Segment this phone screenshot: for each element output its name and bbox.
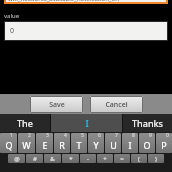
- staticText: +: [103, 155, 107, 163]
- staticText: =: [120, 155, 124, 163]
- staticText: I: [85, 117, 89, 129]
- staticText: U: [110, 139, 117, 151]
- button[interactable]: 8: [122, 133, 138, 153]
- staticText: ): [155, 155, 157, 163]
- button[interactable]: 3: [36, 133, 53, 153]
- staticText: value: [4, 12, 20, 20]
- button[interactable]: &: [44, 154, 61, 163]
- staticText: O: [143, 139, 151, 151]
- button[interactable]: *: [62, 154, 79, 163]
- staticText: &: [50, 155, 55, 163]
- staticText: *: [69, 155, 73, 163]
- button[interactable]: ): [148, 154, 164, 163]
- staticText: (: [138, 155, 140, 163]
- staticText: 8: [132, 133, 135, 139]
- staticText: 7: [115, 133, 118, 139]
- button[interactable]: 2: [18, 133, 35, 153]
- staticText: I: [128, 139, 132, 151]
- staticText: Y: [93, 139, 99, 151]
- button[interactable]: 1: [0, 133, 17, 153]
- staticText: Save: [49, 100, 65, 110]
- staticText: E: [42, 139, 48, 151]
- staticText: 0: [166, 133, 169, 139]
- staticText: #: [33, 155, 37, 163]
- button[interactable]: Save: [30, 96, 83, 113]
- button[interactable]: 6: [88, 133, 104, 153]
- staticText: 0: [10, 26, 15, 36]
- button[interactable]: 0: [4, 21, 168, 41]
- staticText: P: [161, 139, 167, 151]
- button[interactable]: (: [131, 154, 147, 163]
- staticText: 5: [81, 133, 84, 139]
- button[interactable]: The: [0, 114, 50, 132]
- button[interactable]: =: [114, 154, 130, 163]
- staticText: T: [76, 139, 82, 151]
- staticText: 9: [149, 133, 152, 139]
- button[interactable]: I: [51, 114, 122, 132]
- button[interactable]: -: [80, 154, 96, 163]
- staticText: 6: [98, 133, 101, 139]
- button[interactable]: 0: [156, 133, 172, 153]
- button[interactable]: 9: [139, 133, 155, 153]
- button[interactable]: Cancel: [90, 96, 143, 113]
- button[interactable]: +: [97, 154, 113, 163]
- staticText: 2: [28, 133, 31, 139]
- staticText: W: [22, 139, 31, 151]
- button[interactable]: #: [26, 154, 43, 163]
- button[interactable]: @: [8, 154, 25, 163]
- staticText: Q: [5, 139, 13, 151]
- staticText: R: [59, 139, 65, 151]
- staticText: -: [87, 155, 89, 163]
- staticText: 4: [64, 133, 67, 139]
- button[interactable]: 4: [54, 133, 70, 153]
- staticText: Cancel: [105, 100, 128, 110]
- button[interactable]: 7: [105, 133, 121, 153]
- button[interactable]: wifi_networks_available_notification_on: [4, 0, 168, 4]
- button[interactable]: Thanks: [123, 114, 172, 132]
- staticText: 3: [46, 133, 49, 139]
- staticText: Thanks: [132, 117, 163, 129]
- staticText: 1: [10, 133, 13, 139]
- button[interactable]: 5: [71, 133, 87, 153]
- staticText: The: [17, 117, 33, 129]
- staticText: wifi_networks_available_notification_on: [8, 0, 119, 3]
- staticText: @: [14, 155, 20, 163]
